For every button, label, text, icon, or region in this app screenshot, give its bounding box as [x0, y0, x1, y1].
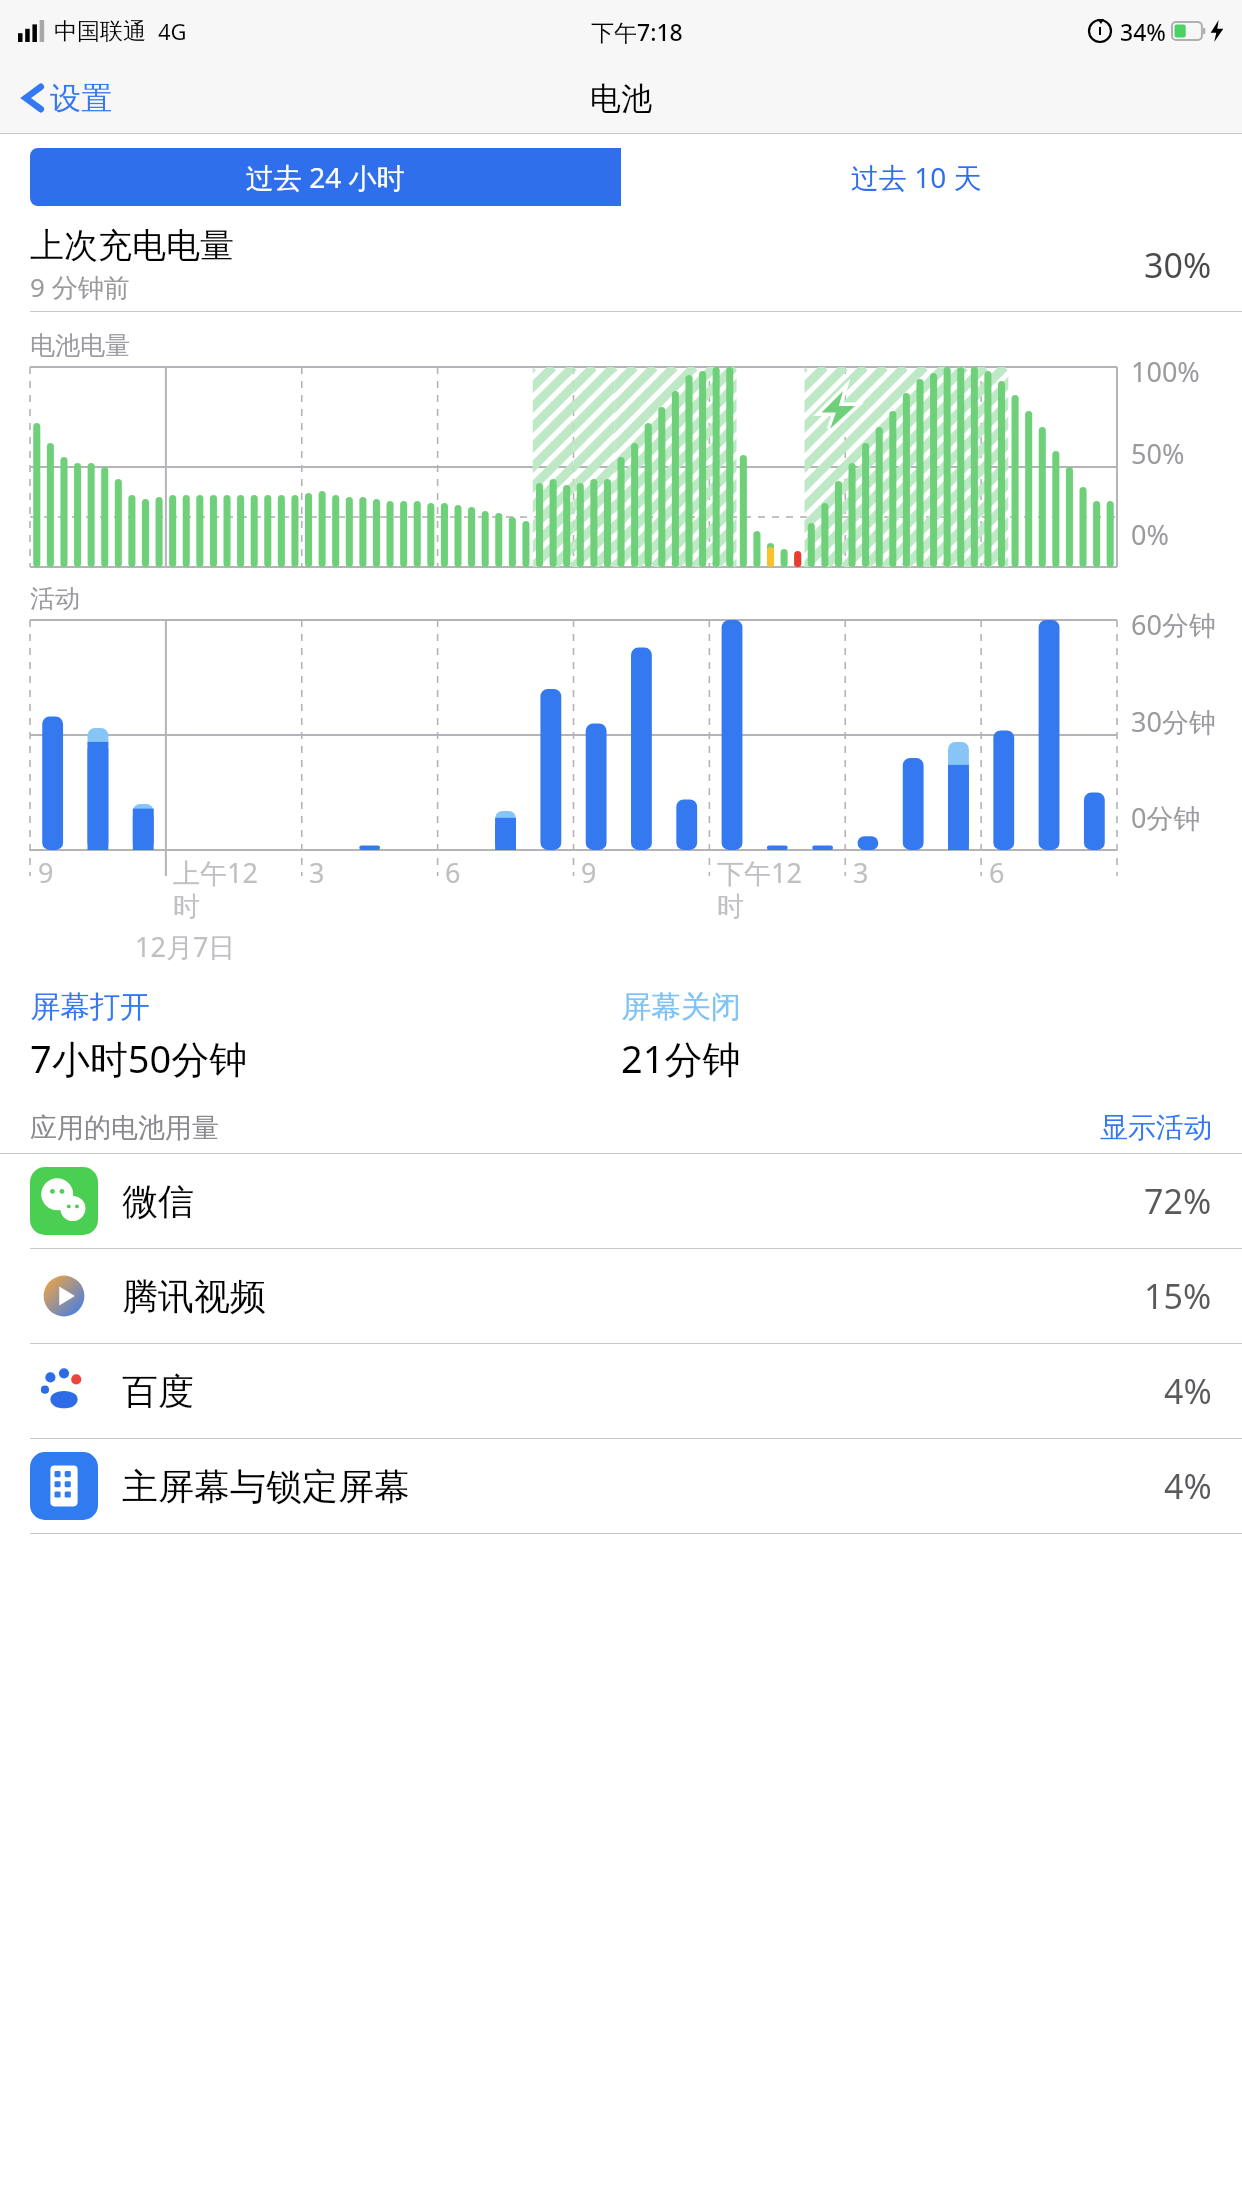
staticText: 4G — [158, 16, 187, 46]
staticText: 设置 — [50, 79, 112, 118]
staticText: 9 分钟前 — [30, 269, 130, 305]
staticText: 微信 — [122, 1179, 194, 1224]
staticText: 上午12 时 — [173, 854, 258, 924]
staticText: 3 — [853, 854, 869, 891]
staticText: 中国联通 — [54, 17, 146, 46]
staticText: 应用的电池用量 — [30, 1111, 219, 1145]
staticText: 百度 — [122, 1369, 194, 1414]
staticText: 60分钟 — [1131, 606, 1216, 643]
staticText: 显示活动 — [1100, 1110, 1212, 1145]
button[interactable]: 过去 10 天 — [621, 148, 1212, 206]
button[interactable]: 设置 — [20, 78, 112, 118]
staticText: 50% — [1131, 435, 1185, 472]
staticText: 34% — [1120, 16, 1166, 47]
staticText: 4% — [1164, 1368, 1212, 1414]
button[interactable]: 腾讯视频 — [0, 1249, 1242, 1344]
staticText: 屏幕打开 — [30, 988, 150, 1026]
staticText: 电池 — [590, 79, 652, 118]
staticText: 屏幕关闭 — [621, 988, 741, 1026]
staticText: 100% — [1131, 353, 1200, 390]
button[interactable]: 显示活动 — [1100, 1110, 1212, 1145]
staticText: 21分钟 — [621, 1032, 741, 1084]
staticText: 0分钟 — [1131, 799, 1201, 836]
staticText: 0% — [1131, 516, 1169, 553]
staticText: 腾讯视频 — [122, 1274, 266, 1319]
button[interactable]: 微信 — [0, 1154, 1242, 1249]
staticText: 15% — [1144, 1273, 1212, 1319]
staticText: 电池电量 — [30, 330, 130, 361]
staticText: 30% — [1144, 242, 1212, 288]
staticText: 9 — [581, 854, 597, 891]
staticText: 6 — [445, 854, 461, 891]
staticText: 下午7:18 — [591, 16, 683, 47]
button[interactable]: 过去 24 小时 — [30, 148, 620, 206]
staticText: 12月7日 — [135, 928, 236, 965]
staticText: 过去 10 天 — [851, 158, 982, 196]
staticText: 72% — [1144, 1178, 1212, 1224]
staticText: 4% — [1164, 1463, 1212, 1509]
staticText: 3 — [309, 854, 325, 891]
button[interactable]: 主屏幕与锁定屏幕 — [0, 1439, 1242, 1534]
staticText: 下午12 时 — [717, 854, 802, 924]
staticText: 上次充电电量 — [30, 224, 234, 267]
button[interactable]: 百度 — [0, 1344, 1242, 1439]
staticText: 主屏幕与锁定屏幕 — [122, 1464, 410, 1509]
staticText: 过去 24 小时 — [246, 158, 405, 196]
staticText: 6 — [989, 854, 1005, 891]
staticText: 9 — [38, 854, 54, 891]
staticText: 活动 — [30, 583, 80, 614]
staticText: 30分钟 — [1131, 703, 1216, 740]
staticText: 7小时50分钟 — [30, 1032, 248, 1084]
